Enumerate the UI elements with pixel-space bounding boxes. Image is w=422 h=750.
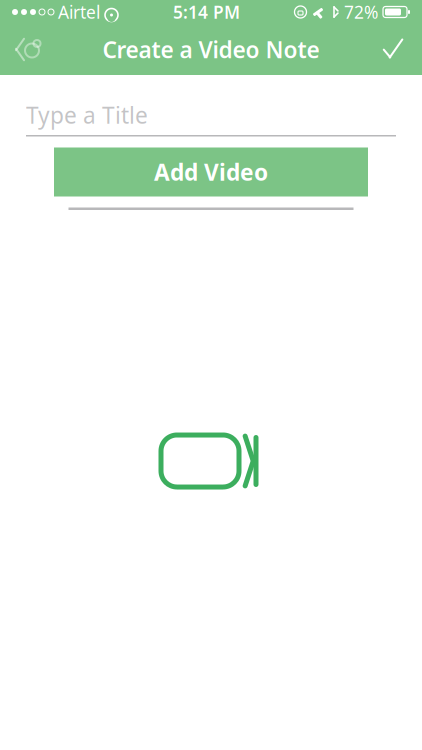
- staticText: 72%: [344, 0, 378, 23]
- button[interactable]: Back: [0, 24, 58, 75]
- staticText: Type a Title: [26, 100, 148, 130]
- button[interactable]: Save: [364, 24, 422, 75]
- staticText: Airtel: [58, 0, 100, 23]
- button[interactable]: Add Video: [54, 147, 368, 196]
- staticText: Create a Video Note: [102, 34, 319, 64]
- staticText: 5:14 PM: [173, 0, 240, 23]
- staticText: Add Video: [154, 157, 268, 187]
